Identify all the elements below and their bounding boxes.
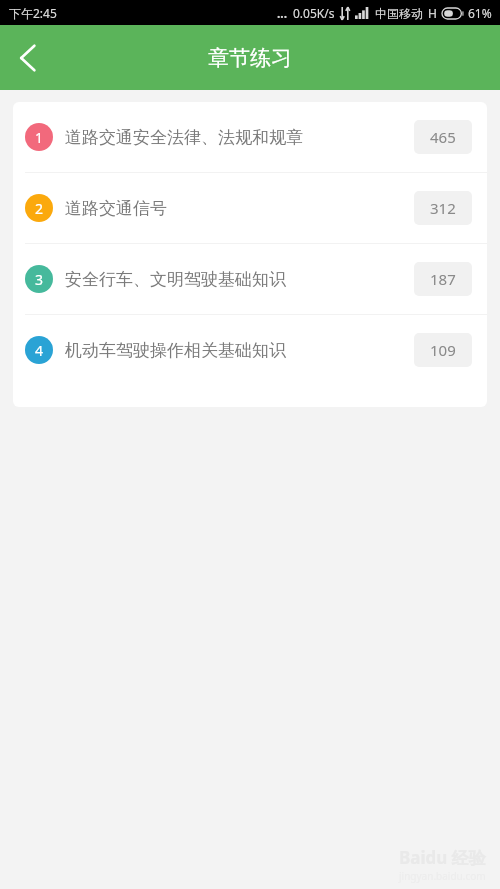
staticText: 道路交通安全法律、法规和规章 <box>65 127 406 148</box>
staticText: 安全行车、文明驾驶基础知识 <box>65 269 406 290</box>
staticText: 109 <box>430 340 456 360</box>
staticText: 2 <box>35 199 44 218</box>
button[interactable]: 3 <box>13 244 487 314</box>
staticText: 机动车驾驶操作相关基础知识 <box>65 340 406 361</box>
staticText: 4 <box>35 341 44 360</box>
staticText: 道路交通信号 <box>65 198 406 219</box>
staticText: 下午2:45 <box>9 5 57 21</box>
staticText: H <box>428 5 437 21</box>
staticText: 章节练习 <box>208 45 292 71</box>
staticText: ... <box>277 5 288 21</box>
staticText: Baidu 经验 <box>399 846 486 869</box>
staticText: 1 <box>35 128 44 147</box>
button[interactable]: 4 <box>13 315 487 385</box>
staticText: 465 <box>430 127 456 147</box>
button[interactable]: 2 <box>13 173 487 243</box>
button[interactable]: 1 <box>13 102 487 172</box>
staticText: 中国移动 <box>375 6 423 21</box>
staticText: 312 <box>430 198 456 218</box>
staticText: 0.05K/s <box>293 5 335 21</box>
staticText: 3 <box>35 270 44 289</box>
staticText: 61% <box>468 5 492 21</box>
button[interactable]: Back <box>0 30 56 86</box>
staticText: 187 <box>430 269 456 289</box>
